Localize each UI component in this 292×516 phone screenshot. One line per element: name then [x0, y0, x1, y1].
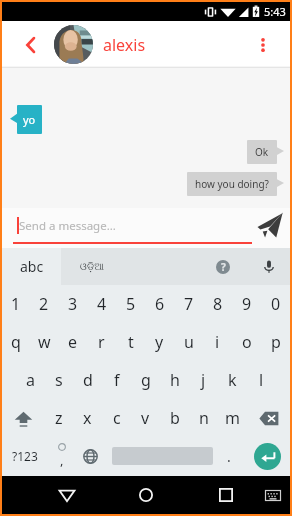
button[interactable]: k — [218, 361, 247, 399]
button[interactable]: r — [87, 323, 116, 361]
staticText: ? — [221, 260, 226, 274]
button[interactable]: Back — [49, 477, 85, 513]
button[interactable]: e — [58, 323, 87, 361]
staticText: . — [227, 447, 231, 466]
staticText: e — [68, 331, 78, 353]
staticText: n — [199, 407, 209, 429]
button[interactable]: abc — [2, 248, 61, 285]
staticText: yo — [23, 112, 36, 127]
button[interactable]: ଓଡ଼ିଆ — [61, 248, 123, 285]
button[interactable]: w — [30, 323, 58, 361]
staticText: o — [242, 331, 252, 353]
staticText: , — [60, 451, 64, 469]
button[interactable]: , — [47, 437, 76, 475]
button[interactable]: h — [160, 361, 189, 399]
button[interactable]: p — [261, 323, 290, 361]
staticText: 6 — [155, 293, 165, 315]
staticText: w — [38, 331, 51, 353]
staticText: abc — [20, 257, 44, 276]
button[interactable]: l — [247, 361, 276, 399]
staticText: r — [98, 331, 105, 353]
staticText: i — [215, 331, 220, 353]
button[interactable]: n — [189, 399, 218, 437]
staticText: 4 — [97, 293, 107, 315]
button[interactable]: u — [174, 323, 203, 361]
staticText: 3 — [68, 293, 78, 315]
staticText: u — [184, 331, 194, 353]
button[interactable]: 0 — [261, 285, 290, 323]
button[interactable]: z — [44, 399, 73, 437]
button[interactable]: j — [189, 361, 218, 399]
button[interactable]: q — [2, 323, 30, 361]
staticText: how you doing? — [195, 177, 269, 191]
staticText: ?123 — [12, 448, 38, 464]
staticText: c — [113, 407, 121, 429]
button[interactable]: s — [44, 361, 73, 399]
button[interactable]: 8 — [203, 285, 232, 323]
button[interactable]: 4 — [87, 285, 116, 323]
staticText: m — [225, 407, 240, 429]
staticText: 9 — [242, 293, 252, 315]
button[interactable]: Back — [16, 31, 44, 59]
button[interactable]: . — [213, 437, 244, 475]
button[interactable]: Shift — [2, 399, 44, 437]
staticText: 0 — [271, 293, 281, 315]
staticText: 2 — [39, 293, 49, 315]
staticText: t — [128, 331, 134, 353]
staticText: f — [114, 369, 120, 391]
button[interactable]: d — [73, 361, 102, 399]
button[interactable]: Profile photo — [54, 25, 93, 64]
button[interactable]: t — [116, 323, 145, 361]
button[interactable]: Help — [208, 252, 238, 282]
staticText: 1 — [11, 293, 21, 315]
button[interactable]: o — [232, 323, 261, 361]
button[interactable]: x — [73, 399, 102, 437]
staticText: j — [201, 369, 206, 391]
button[interactable]: Home — [128, 477, 164, 513]
staticText: z — [55, 407, 63, 429]
staticText: y — [155, 331, 164, 353]
button[interactable]: 1 — [2, 285, 30, 323]
button[interactable]: f — [102, 361, 131, 399]
staticText: 7 — [184, 293, 194, 315]
button[interactable]: Change language — [76, 437, 105, 475]
button[interactable]: i — [203, 323, 232, 361]
staticText: Ok — [255, 145, 269, 159]
staticText: d — [83, 369, 93, 391]
staticText: k — [228, 369, 237, 391]
button[interactable]: More options — [248, 30, 278, 60]
staticText: 5:43 — [264, 4, 286, 19]
button[interactable]: 3 — [58, 285, 87, 323]
staticText: p — [271, 331, 281, 353]
staticText: s — [55, 369, 63, 391]
button[interactable]: v — [131, 399, 160, 437]
button[interactable]: 7 — [174, 285, 203, 323]
button[interactable]: Backspace — [247, 399, 290, 437]
button[interactable]: Keyboard — [256, 477, 290, 513]
button[interactable]: y — [145, 323, 174, 361]
staticText: v — [141, 407, 150, 429]
button[interactable]: ?123 — [2, 437, 47, 475]
button[interactable]: Enter — [254, 443, 281, 470]
button[interactable]: 6 — [145, 285, 174, 323]
button[interactable]: 9 — [232, 285, 261, 323]
staticText: 8 — [213, 293, 223, 315]
button[interactable]: g — [131, 361, 160, 399]
staticText: alexis — [103, 34, 146, 56]
staticText: b — [170, 407, 180, 429]
staticText: q — [11, 331, 21, 353]
button[interactable]: 5 — [116, 285, 145, 323]
button[interactable]: Recent apps — [208, 477, 244, 513]
button[interactable]: Voice input — [254, 252, 284, 282]
button[interactable]: 2 — [30, 285, 58, 323]
staticText: h — [170, 369, 180, 391]
button[interactable]: a — [16, 361, 44, 399]
staticText: g — [141, 369, 151, 391]
button[interactable]: m — [218, 399, 247, 437]
button[interactable]: Send — [254, 209, 286, 241]
button[interactable]: b — [160, 399, 189, 437]
staticText: l — [259, 369, 264, 391]
button[interactable]: c — [102, 399, 131, 437]
staticText: Send a message... — [19, 218, 116, 234]
